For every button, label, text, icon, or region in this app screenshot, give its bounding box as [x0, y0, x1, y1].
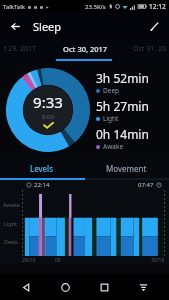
staticText: Deep [4, 238, 18, 245]
staticText: 0h 14min [96, 126, 149, 142]
staticText: 00 [55, 257, 61, 264]
staticText: 3h 52min [96, 70, 149, 86]
staticText: Deep [103, 86, 120, 95]
staticText: 12:12 [149, 2, 166, 11]
button[interactable]: Home [52, 274, 78, 300]
staticText: Levels [30, 163, 54, 174]
button[interactable]: Edit [143, 15, 165, 37]
staticText: Movement [106, 163, 147, 174]
staticText: Light [103, 114, 119, 123]
staticText: 07:47 [138, 181, 154, 189]
staticText: 5h 27min [96, 98, 149, 114]
staticText: TalkTalk [3, 3, 25, 11]
staticText: Light [4, 220, 18, 227]
button[interactable]: Back [4, 15, 26, 37]
button[interactable]: Levels [0, 158, 84, 178]
staticText: Awake [103, 142, 124, 151]
staticText: Sleep [33, 19, 62, 34]
button[interactable]: Hide navigation bar [130, 274, 156, 300]
staticText: t 29, 2017 [4, 44, 37, 54]
staticText: Oct 31, 20 [133, 44, 166, 54]
staticText: 8:00 [42, 113, 54, 121]
button[interactable]: Oct 31, 20 [113, 39, 169, 59]
staticText: 9:33 [33, 92, 63, 112]
button[interactable]: Movement [84, 158, 169, 178]
staticText: 23.5K/s [85, 3, 106, 11]
staticText: 29/10 [22, 257, 36, 264]
staticText: 22:14 [34, 181, 50, 189]
staticText: Oct 30, 2017 [63, 44, 108, 54]
button[interactable]: t 29, 2017 [0, 39, 57, 59]
button[interactable]: Back [13, 274, 39, 300]
button[interactable]: Recents [91, 274, 117, 300]
staticText: 30/10 [151, 257, 165, 264]
staticText: Awake [3, 201, 20, 208]
button[interactable]: Oct 30, 2017 [57, 39, 113, 59]
